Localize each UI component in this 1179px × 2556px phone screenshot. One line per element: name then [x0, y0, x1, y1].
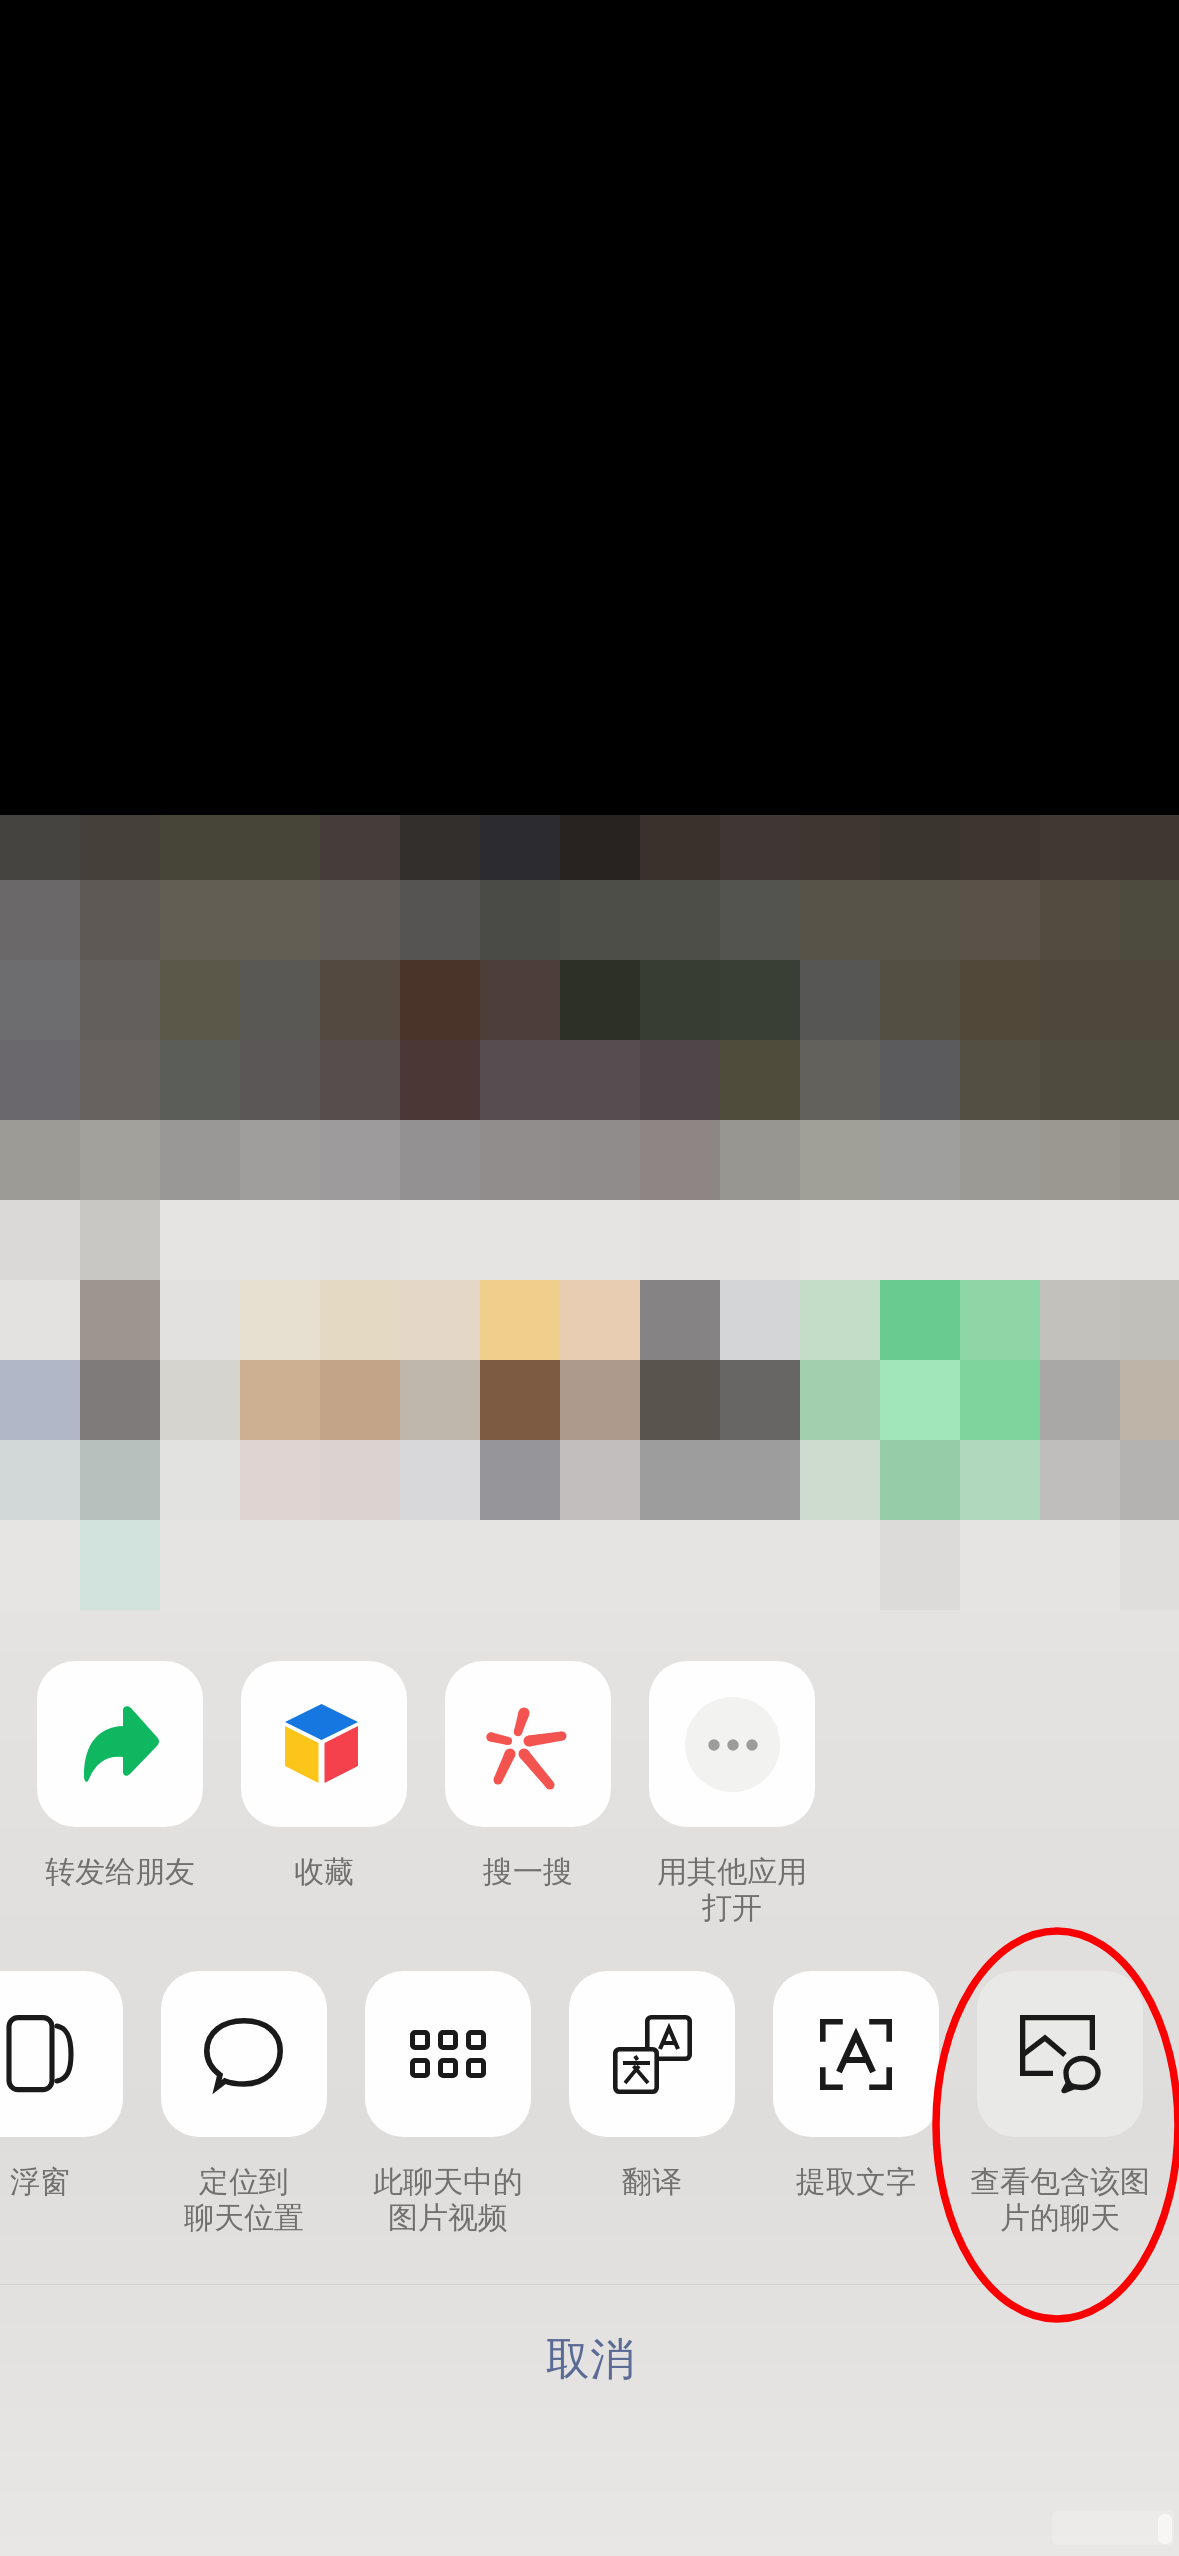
- other: Forward to friend: [70, 1694, 170, 1794]
- staticText: 定位到 聊天位置: [141, 2163, 347, 2237]
- other: Favorite: [274, 1694, 374, 1794]
- other: Search: [478, 1694, 578, 1794]
- other: Photos and videos in chat: [410, 2030, 486, 2078]
- button[interactable]: Forward to friend: [17, 1661, 223, 1891]
- staticText: 浮窗: [0, 2163, 143, 2201]
- staticText: 取消: [546, 2332, 634, 2387]
- other: Translate: [613, 2015, 692, 2094]
- other: Open with other apps: [685, 1697, 780, 1792]
- staticText: 用其他应用 打开: [629, 1853, 835, 1927]
- button[interactable]: Locate in chat: [141, 1971, 347, 2237]
- button[interactable]: 取消: [0, 2285, 1179, 2425]
- staticText: 搜一搜: [425, 1853, 631, 1891]
- button[interactable]: Extract text: [753, 1971, 959, 2201]
- button[interactable]: Float window: [0, 1971, 143, 2201]
- staticText: 收藏: [221, 1853, 427, 1891]
- staticText: 此聊天中的 图片视频: [345, 2163, 551, 2237]
- other: Float window: [4, 2015, 76, 2093]
- staticText: 翻译: [549, 2163, 755, 2201]
- other: Locate in chat: [204, 2018, 284, 2091]
- staticText: 提取文字: [753, 2163, 959, 2201]
- button[interactable]: Photos and videos in chat: [345, 1971, 551, 2237]
- staticText: 转发给朋友: [17, 1853, 223, 1891]
- staticText: 查看包含该图 片的聊天: [957, 2163, 1163, 2237]
- button[interactable]: Open with other apps: [629, 1661, 835, 1927]
- other: Extract text: [820, 2019, 892, 2090]
- button[interactable]: Favorite: [221, 1661, 427, 1891]
- button[interactable]: Search: [425, 1661, 631, 1891]
- other: View chats containing this image: [1020, 2015, 1100, 2093]
- button[interactable]: Translate: [549, 1971, 755, 2201]
- button[interactable]: View chats containing this image: [957, 1971, 1163, 2237]
